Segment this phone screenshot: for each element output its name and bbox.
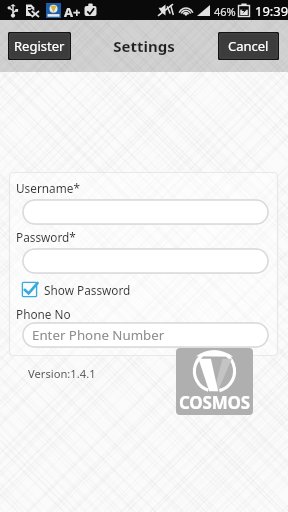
staticText: Register: [14, 37, 65, 55]
staticText: Username*: [16, 180, 80, 196]
button[interactable]: [22, 248, 269, 274]
staticText: 19:39: [255, 2, 288, 20]
button[interactable]: [22, 199, 269, 225]
staticText: Enter Phone Number: [32, 326, 165, 344]
staticText: Settings: [113, 36, 175, 56]
staticText: A+: [64, 3, 81, 21]
button[interactable]: Show Password: [21, 281, 131, 298]
button[interactable]: Register: [8, 32, 71, 60]
staticText: Phone No: [16, 306, 71, 322]
staticText: Cancel: [228, 37, 269, 55]
staticText: Version:1.4.1: [28, 366, 96, 381]
staticText: Show Password: [44, 282, 131, 298]
staticText: COSMOS: [179, 391, 251, 414]
other: Cosmos logo: [176, 348, 253, 415]
staticText: 46%: [214, 4, 236, 19]
staticText: Password*: [16, 229, 76, 245]
button[interactable]: Cancel: [218, 32, 279, 60]
button[interactable]: Enter Phone Number: [22, 322, 269, 348]
